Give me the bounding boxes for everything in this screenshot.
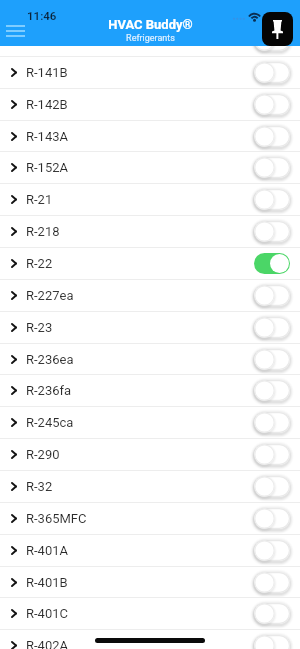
button[interactable]: Toggle off [254,94,290,115]
button[interactable]: Toggle on [254,253,290,274]
staticText: HVAC Buddy® [108,17,193,32]
button[interactable]: R-401B [0,566,300,598]
button[interactable]: Toggle off [254,508,290,529]
button[interactable]: Toggle off [254,126,290,147]
button[interactable]: Toggle off [254,380,290,401]
button[interactable]: R-23 [0,311,300,343]
staticText: R-365MFC [26,511,87,526]
button[interactable]: Toggle off [254,476,290,497]
button[interactable]: Toggle off [254,62,290,83]
staticText: R-23 [26,320,53,335]
button[interactable]: R-21 [0,183,300,215]
staticText: R-227ea [26,288,74,303]
button[interactable]: R-152A [0,151,300,183]
button[interactable]: R-143A [0,120,300,152]
staticText: R-245ca [26,415,74,430]
staticText: R-142B [26,97,68,112]
staticText: R-21 [26,192,53,207]
staticText: R-236fa [26,383,72,398]
button[interactable]: R-290 [0,438,300,470]
staticText: R-152A [26,160,69,175]
button[interactable]: Toggle off [254,444,290,465]
button[interactable]: R-236fa [0,374,300,406]
staticText: R-143A [26,129,69,144]
button[interactable]: Menu [6,25,25,37]
button[interactable]: R-32 [0,470,300,502]
staticText: R-401B [26,575,68,590]
staticText: R-141B [26,65,68,80]
button[interactable]: Toggle off [254,189,290,210]
button[interactable]: Toggle off [254,221,290,242]
staticText: 11:46 [27,9,57,22]
staticText: R-218 [26,224,60,239]
button[interactable]: R-245ca [0,406,300,438]
button[interactable]: Toggle off [254,30,290,51]
staticText: R-401A [26,543,69,558]
button[interactable]: Pin [262,12,293,46]
button[interactable]: R-218 [0,215,300,247]
button[interactable]: Toggle off [254,317,290,338]
button[interactable]: Toggle off [254,635,290,649]
button[interactable]: Toggle off [254,540,290,561]
staticText: R-134A [26,33,69,48]
button[interactable]: R-22 [0,247,300,279]
staticText: R-32 [26,479,53,494]
staticText: R-22 [26,256,53,271]
button[interactable]: R-134A [0,24,300,56]
button[interactable]: Toggle off [254,603,290,624]
button[interactable]: Toggle off [254,349,290,370]
button[interactable]: Toggle off [254,157,290,178]
button[interactable]: R-142B [0,88,300,120]
staticText: R-401C [26,606,68,621]
button[interactable]: R-227ea [0,279,300,311]
staticText: R-402A [26,638,69,649]
staticText: Refrigerants [126,33,175,44]
button[interactable]: R-365MFC [0,502,300,534]
button[interactable]: R-401A [0,534,300,566]
button[interactable]: Toggle off [254,285,290,306]
button[interactable]: R-401C [0,597,300,629]
button[interactable]: R-141B [0,56,300,88]
button[interactable]: R-236ea [0,343,300,375]
staticText: R-236ea [26,352,74,367]
button[interactable]: Toggle off [254,412,290,433]
button[interactable]: Toggle off [254,572,290,593]
staticText: R-290 [26,447,60,462]
button[interactable]: R-402A [0,629,300,649]
